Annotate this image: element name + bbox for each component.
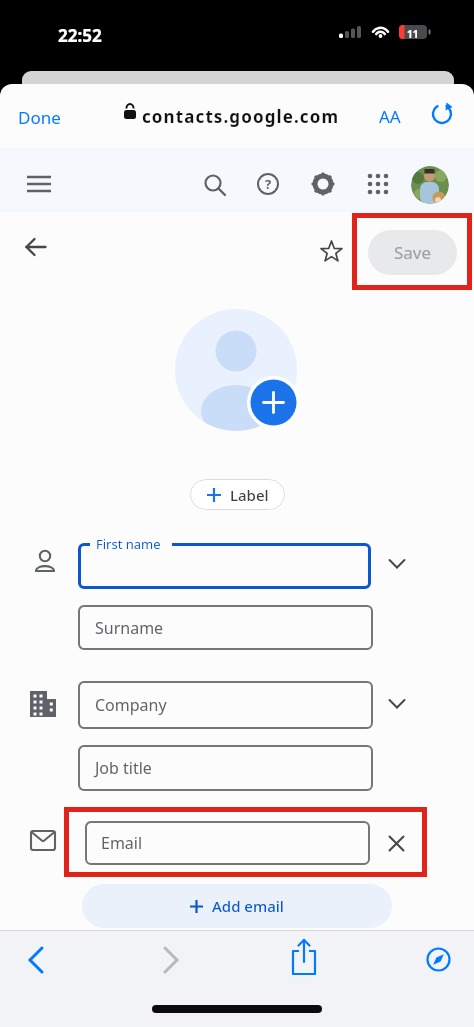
button[interactable]: Email [85, 821, 370, 865]
staticText: Label [230, 485, 269, 505]
button[interactable] [311, 172, 335, 196]
staticText: contacts.google.com [142, 105, 340, 128]
button[interactable] [27, 172, 51, 196]
button[interactable]: Save [368, 230, 457, 275]
button[interactable] [426, 947, 451, 972]
button[interactable] [411, 166, 449, 204]
button[interactable] [388, 558, 406, 570]
button[interactable]: ? [257, 173, 279, 195]
button[interactable] [203, 173, 227, 197]
button[interactable] [430, 102, 454, 126]
staticText: 11 [407, 27, 419, 41]
button[interactable]: Add email [82, 884, 392, 928]
button[interactable]: Label [190, 479, 285, 510]
staticText: 22:52 [58, 24, 102, 47]
button[interactable] [175, 309, 297, 431]
button[interactable] [290, 938, 318, 976]
button[interactable] [24, 946, 48, 974]
button[interactable] [247, 376, 300, 429]
staticText: Email [101, 832, 143, 854]
button[interactable] [388, 835, 405, 852]
button[interactable] [78, 543, 371, 589]
staticText: Add email [212, 896, 284, 916]
staticText: Company [95, 694, 167, 716]
button[interactable] [159, 946, 183, 974]
button[interactable]: AA [379, 105, 401, 128]
staticText: Job title [95, 757, 152, 779]
button[interactable] [25, 236, 47, 258]
button[interactable]: Company [78, 681, 373, 729]
button[interactable]: Surname [78, 605, 373, 650]
button[interactable]: Job title [78, 745, 373, 791]
button[interactable]: Done [18, 106, 61, 129]
staticText: ? [265, 175, 272, 193]
button[interactable] [320, 240, 343, 263]
button[interactable] [367, 173, 389, 195]
staticText: Save [394, 241, 432, 264]
staticText: First name [96, 535, 161, 553]
button[interactable] [388, 698, 406, 710]
staticText: Surname [95, 617, 164, 639]
